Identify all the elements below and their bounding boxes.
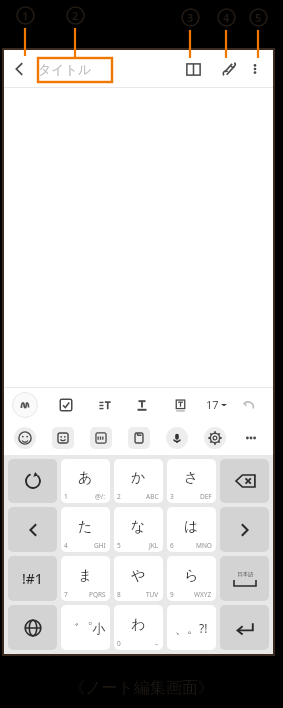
- staticText: 1: [64, 492, 68, 501]
- button[interactable]: Change language: [8, 605, 57, 650]
- staticText: ま: [78, 567, 93, 585]
- staticText: 4: [223, 10, 230, 25]
- staticText: ABC: [146, 492, 159, 501]
- button[interactable]: Settings: [204, 427, 226, 449]
- button[interactable]: や: [114, 556, 163, 601]
- button[interactable]: Attach: [213, 55, 241, 83]
- button[interactable]: た: [61, 507, 110, 552]
- staticText: 7: [64, 590, 68, 599]
- staticText: 3: [187, 10, 194, 25]
- button[interactable]: さ: [167, 459, 216, 503]
- staticText: や: [131, 567, 146, 585]
- staticText: WXYZ: [194, 590, 212, 599]
- button[interactable]: わ: [114, 605, 163, 650]
- button[interactable]: Enter: [220, 605, 269, 650]
- button[interactable]: Symbols: [8, 556, 57, 601]
- staticText: GHI: [94, 541, 106, 550]
- staticText: 17: [206, 397, 219, 412]
- button[interactable]: Stickers: [52, 427, 74, 449]
- button[interactable]: は: [167, 507, 216, 552]
- button[interactable]: Cursor left: [8, 507, 57, 552]
- staticText: 4: [64, 541, 68, 550]
- button[interactable]: な: [114, 507, 163, 552]
- staticText: PQRS: [89, 590, 106, 599]
- staticText: !#1: [22, 569, 43, 588]
- button[interactable]: か: [114, 459, 163, 503]
- staticText: わ: [131, 616, 146, 634]
- button[interactable]: Clipboard: [128, 427, 150, 449]
- button[interactable]: 17: [204, 397, 229, 412]
- staticText: 、。?!: [175, 620, 208, 636]
- button[interactable]: Undo: [237, 393, 261, 417]
- staticText: 《ノート編集画面》: [69, 678, 214, 698]
- staticText: ゛゜小: [66, 620, 106, 636]
- button[interactable]: Text format: [130, 393, 154, 417]
- staticText: 日本語: [237, 571, 254, 578]
- staticText: DEF: [200, 492, 212, 501]
- button[interactable]: More options: [243, 57, 267, 81]
- button[interactable]: タイトル: [38, 61, 92, 77]
- button[interactable]: Backspace: [220, 459, 269, 503]
- button[interactable]: あ: [61, 459, 110, 503]
- staticText: 0: [117, 639, 121, 648]
- button[interactable]: Undo: [8, 459, 57, 503]
- button[interactable]: Voice input: [166, 427, 188, 449]
- button[interactable]: ま: [61, 556, 110, 601]
- button[interactable]: ら: [167, 556, 216, 601]
- button[interactable]: More options: [240, 427, 262, 449]
- staticText: –: [155, 639, 159, 648]
- button[interactable]: 、。?!: [167, 605, 216, 650]
- button[interactable]: Paragraph style: [92, 393, 116, 417]
- button[interactable]: Cursor right: [220, 507, 269, 552]
- staticText: 1: [22, 8, 29, 23]
- staticText: MNO: [196, 541, 212, 550]
- button[interactable]: Checklist: [54, 393, 78, 417]
- staticText: 9: [170, 590, 174, 599]
- staticText: JKL: [149, 541, 159, 550]
- staticText: さ: [184, 469, 199, 487]
- button[interactable]: ゛゜小: [61, 605, 110, 650]
- staticText: 6: [170, 541, 174, 550]
- button[interactable]: Reading mode: [179, 55, 207, 83]
- staticText: 3: [170, 492, 174, 501]
- staticText: は: [184, 518, 199, 536]
- staticText: @/:: [95, 492, 106, 501]
- button[interactable]: Back: [4, 54, 34, 84]
- button[interactable]: Text box: [168, 393, 192, 417]
- staticText: 2: [117, 492, 121, 501]
- staticText: 5: [255, 10, 262, 25]
- staticText: 2: [72, 8, 79, 23]
- staticText: 5: [117, 541, 121, 550]
- button[interactable]: Emoji: [14, 427, 36, 449]
- staticText: か: [131, 469, 146, 487]
- button[interactable]: GIF: [90, 427, 112, 449]
- staticText: ら: [184, 567, 199, 585]
- button[interactable]: Handwriting: [12, 392, 38, 418]
- staticText: 8: [117, 590, 121, 599]
- staticText: た: [78, 518, 93, 536]
- staticText: な: [131, 518, 146, 536]
- button[interactable]: Space: [220, 556, 269, 601]
- staticText: TUV: [146, 590, 159, 599]
- staticText: あ: [78, 469, 93, 487]
